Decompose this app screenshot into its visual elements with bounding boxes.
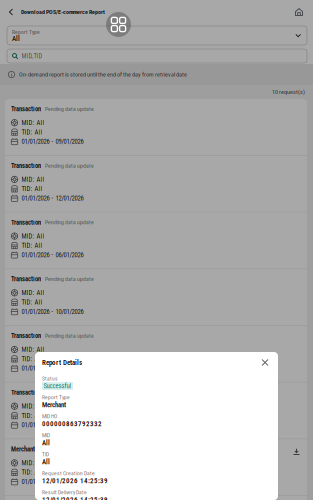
staticText: Download POS/E-commerce Report [21,8,105,15]
staticText: TID: All [21,355,42,363]
staticText: 10 request(s) [272,88,305,96]
staticText: Transaction [11,275,41,283]
staticText: Pending data update [45,219,94,226]
staticText: TID: All [21,468,42,476]
staticText: MID: All [21,402,44,410]
button[interactable]: Accessibility menu [106,12,131,37]
staticText: 01/01/2026 - 10/01/2026 [21,308,83,315]
button[interactable]: MID, TID [7,49,307,63]
staticText: Report Type [42,394,70,401]
staticText: Pending data update [45,389,94,396]
staticText: Report Details [42,358,82,367]
staticText: Pending data update [45,162,94,169]
staticText: 12/01/2026 14:25:39 [42,496,108,500]
button[interactable]: Close [258,355,272,369]
button[interactable]: Home [290,1,308,23]
staticText: Request Creation Date [42,470,95,477]
button[interactable]: Transaction [5,326,307,382]
staticText: MID: All [21,459,44,467]
staticText: TID: All [21,242,42,249]
staticText: 01/01/2026 - 10/01/2026 [21,364,83,372]
staticText: TID: All [21,128,42,136]
staticText: MID: All [21,232,44,240]
staticText: MID, TID [21,52,42,60]
staticText: Status [42,375,58,382]
button[interactable]: Back [1,1,21,23]
button[interactable]: Transaction [5,156,307,212]
staticText: Merchant [11,445,35,453]
staticText: TID: All [21,298,42,306]
staticText: Pending data update [45,106,94,112]
button[interactable]: Merchant [5,496,307,500]
staticText: 01/01/2026 - 10/01/2026 [21,421,83,429]
staticText: Transaction [11,219,41,226]
staticText: All [42,439,50,447]
staticText: 01/01/2026 - 10/01/2026 [21,478,83,486]
staticText: MID: All [21,289,44,297]
staticText: Pending data update [45,332,94,339]
staticText: MID: All [21,346,44,353]
staticText: All [42,458,50,466]
staticText: TID: All [21,412,42,419]
staticText: 01/01/2026 - 12/01/2026 [21,194,83,202]
staticText: Transaction [11,332,41,340]
staticText: All [12,34,20,43]
staticText: TID: All [21,185,42,193]
button[interactable]: Merchant [5,439,307,495]
staticText: On-demand report is stored until the end… [19,71,187,78]
staticText: MID HO [42,413,57,420]
button[interactable]: Transaction [5,212,307,268]
button[interactable]: Transaction [5,382,307,438]
staticText: MID [42,432,50,439]
staticText: Report Type [12,29,40,35]
staticText: 01/01/2026 - 06/01/2026 [21,251,83,259]
staticText: Merchant [42,401,66,409]
button[interactable]: Transaction [5,269,307,325]
staticText: Transaction [11,105,41,113]
button[interactable]: Report Type [7,26,307,45]
staticText: MID: All [21,119,44,127]
staticText: 12/01/2026 14:25:39 [42,477,108,485]
button[interactable]: Transaction [5,99,307,155]
staticText: Pending data update [45,276,94,282]
staticText: TID [42,451,49,458]
staticText: MID: All [21,175,44,183]
staticText: Result Delivery Date [42,489,87,496]
staticText: 01/01/2026 - 09/01/2026 [21,138,83,145]
staticText: 000000863792332 [42,420,102,428]
staticText: Successful [43,382,71,390]
staticText: Transaction [11,162,41,170]
staticText: Transaction [11,389,41,396]
